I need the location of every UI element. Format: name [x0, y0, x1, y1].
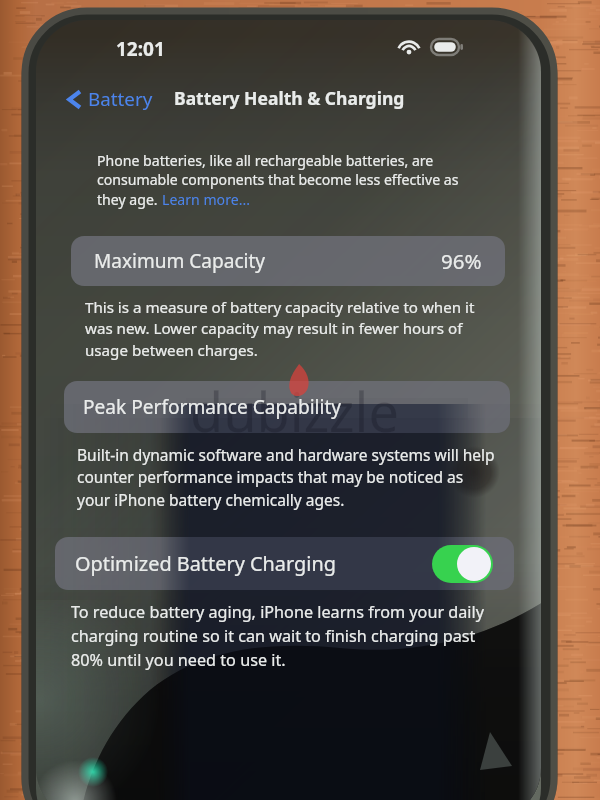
- staticText: consumable components that become less e…: [97, 170, 459, 189]
- staticText: Learn more...: [162, 190, 250, 209]
- staticText: they age.: [97, 190, 162, 209]
- staticText: counter performance impacts that may be …: [77, 466, 464, 487]
- staticText: usage between charges.: [85, 340, 258, 361]
- staticText: Optimized Battery Charging: [75, 550, 336, 577]
- staticText: 80% until you need to use it.: [71, 649, 286, 671]
- staticText: your iPhone battery chemically ages.: [77, 489, 345, 510]
- staticText: Battery: [88, 86, 153, 112]
- staticText: Battery Health & Charging: [174, 86, 405, 110]
- staticText: Peak Performance Capability: [83, 394, 342, 420]
- button[interactable]: Maximum Capacity: [71, 236, 505, 286]
- staticText: 12:01: [116, 36, 165, 62]
- staticText: charging routine so it can wait to finis…: [71, 625, 476, 647]
- button[interactable]: Peak Performance Capability: [64, 381, 510, 433]
- staticText: 96%: [441, 247, 482, 275]
- staticText: Phone batteries, like all rechargeable b…: [97, 151, 434, 170]
- staticText: This is a measure of battery capacity re…: [85, 297, 475, 318]
- button[interactable]: Battery: [64, 82, 157, 116]
- staticText: was new. Lower capacity may result in fe…: [85, 318, 463, 339]
- button[interactable]: Optimized Battery Charging, on: [432, 545, 493, 583]
- staticText: To reduce battery aging, iPhone learns f…: [71, 601, 484, 623]
- button[interactable]: Optimized Battery Charging: [55, 537, 514, 590]
- staticText: dubizzle: [190, 374, 399, 448]
- staticText: Built-in dynamic software and hardware s…: [77, 444, 495, 465]
- staticText: Maximum Capacity: [94, 248, 266, 274]
